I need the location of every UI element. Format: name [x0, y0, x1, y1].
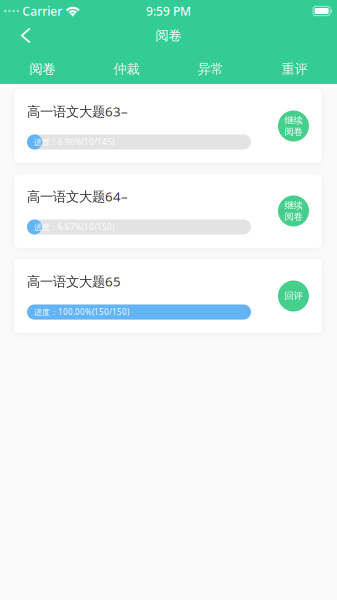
staticText: 进度：6.67%(10/150)	[34, 222, 114, 232]
staticText: 仲裁	[113, 61, 139, 77]
staticText: 阅卷	[284, 126, 302, 137]
staticText: 阅卷	[29, 61, 55, 77]
button[interactable]: Back	[10, 19, 42, 51]
staticText: 阅卷	[155, 27, 181, 44]
staticText: 阅卷	[284, 211, 302, 222]
button[interactable]: 重评	[252, 57, 336, 81]
staticText: 继续	[284, 114, 302, 126]
staticText: 高一语文大题63–	[27, 102, 128, 120]
staticText: 异常	[197, 61, 223, 77]
staticText: 重评	[281, 61, 307, 77]
staticText: 继续	[284, 199, 302, 211]
button[interactable]: 回评	[278, 280, 309, 311]
button[interactable]: 阅卷	[0, 57, 84, 81]
staticText: 进度：100.00%(150/150)	[34, 307, 129, 317]
staticText: 进度：6.90%(10/145)	[34, 137, 114, 147]
staticText: 回评	[284, 290, 302, 302]
button[interactable]: 继续	[278, 195, 309, 226]
staticText: 9:59 PM	[146, 3, 191, 19]
staticText: Carrier	[22, 3, 62, 19]
button[interactable]: 异常	[168, 57, 252, 81]
button[interactable]: 继续	[278, 110, 309, 141]
staticText: 高一语文大题64–	[27, 187, 128, 205]
staticText: 高一语文大题65	[27, 272, 121, 290]
button[interactable]: 仲裁	[84, 57, 168, 81]
